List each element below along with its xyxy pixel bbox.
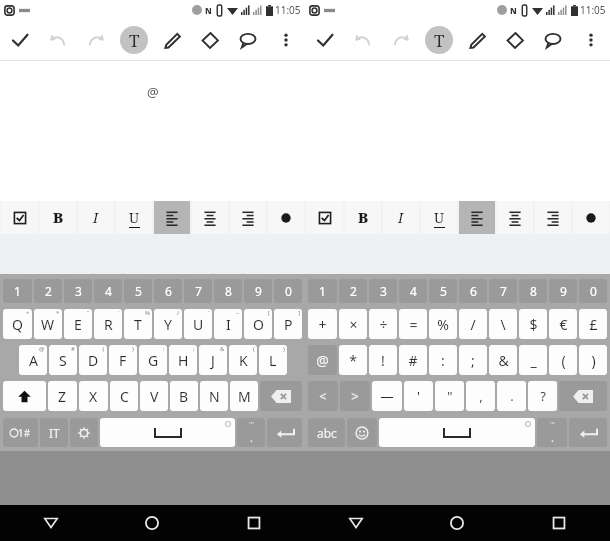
button[interactable]: N xyxy=(200,381,228,411)
button[interactable]: 1 xyxy=(3,279,32,303)
button[interactable]: \ xyxy=(489,309,517,339)
button[interactable] xyxy=(459,201,495,234)
button[interactable]: ( xyxy=(549,345,577,375)
button[interactable]: abc xyxy=(308,418,345,447)
button[interactable]: 5 xyxy=(124,279,152,303)
button[interactable]: U xyxy=(116,201,152,234)
button[interactable]: 0 xyxy=(274,279,302,303)
button[interactable]: : xyxy=(429,345,457,375)
button[interactable]: Undo xyxy=(344,20,382,60)
button[interactable]: Done xyxy=(0,20,39,60)
button[interactable]: Recents xyxy=(203,505,305,541)
button[interactable]: , xyxy=(466,381,495,411)
button[interactable]: ? xyxy=(528,381,557,411)
button[interactable]: E xyxy=(64,309,92,339)
button[interactable]: = xyxy=(399,309,427,339)
button[interactable]: & xyxy=(489,345,517,375)
button[interactable]: V xyxy=(140,381,168,411)
button[interactable]: H xyxy=(169,345,197,375)
button[interactable]: IT xyxy=(40,418,68,447)
button[interactable]: B xyxy=(170,381,198,411)
button[interactable]: I xyxy=(214,309,242,339)
button[interactable]: — xyxy=(372,381,402,411)
button[interactable]: ! xyxy=(369,345,397,375)
button[interactable]: B xyxy=(40,201,76,234)
button[interactable]: J xyxy=(199,345,227,375)
button[interactable]: ) xyxy=(579,345,607,375)
button[interactable] xyxy=(497,201,533,234)
button[interactable]: 4 xyxy=(94,279,122,303)
button[interactable]: 8 xyxy=(519,279,547,303)
button[interactable]: U xyxy=(421,201,457,234)
button[interactable]: D xyxy=(79,345,107,375)
button[interactable]: € xyxy=(549,309,577,339)
button[interactable] xyxy=(230,201,266,234)
button[interactable]: Done xyxy=(305,20,344,60)
button[interactable]: Q xyxy=(3,309,32,339)
button[interactable]: L xyxy=(259,345,287,375)
button[interactable]: 6 xyxy=(154,279,182,303)
button[interactable]: Enter xyxy=(267,418,302,447)
button[interactable]: Comment xyxy=(534,20,572,60)
button[interactable]: Shift xyxy=(3,381,46,411)
button[interactable]: F xyxy=(109,345,137,375)
button[interactable]: 2 xyxy=(34,279,62,303)
button[interactable]: B xyxy=(345,201,381,234)
button[interactable]: W xyxy=(34,309,62,339)
button[interactable]: 8 xyxy=(214,279,242,303)
button[interactable]: Pen xyxy=(458,20,496,60)
button[interactable]: 3 xyxy=(64,279,92,303)
button[interactable]: Back xyxy=(0,505,101,541)
button[interactable]: M xyxy=(230,381,258,411)
button[interactable]: Enter xyxy=(569,418,607,447)
button[interactable]: # xyxy=(399,345,427,375)
button[interactable]: Eraser xyxy=(496,20,534,60)
button[interactable]: Home xyxy=(406,505,508,541)
button[interactable]: More options xyxy=(572,20,610,60)
button[interactable]: Period xyxy=(537,418,567,447)
button[interactable]: Space xyxy=(100,418,235,447)
button[interactable]: 5 xyxy=(429,279,457,303)
button[interactable]: 1 xyxy=(308,279,337,303)
button[interactable]: More options xyxy=(267,20,305,60)
button[interactable]: Settings xyxy=(70,418,98,447)
button[interactable]: 0 xyxy=(579,279,607,303)
button[interactable]: 9 xyxy=(549,279,577,303)
button[interactable]: × xyxy=(339,309,367,339)
button[interactable]: $ xyxy=(519,309,547,339)
button[interactable]: Text xyxy=(420,20,458,60)
button[interactable]: Z xyxy=(48,381,77,411)
button[interactable]: Home xyxy=(101,505,203,541)
button[interactable]: I xyxy=(383,201,419,234)
button[interactable]: Undo xyxy=(39,20,77,60)
button[interactable]: Pen xyxy=(153,20,191,60)
button[interactable]: Eraser xyxy=(191,20,229,60)
button[interactable]: C xyxy=(110,381,138,411)
button[interactable]: Recents xyxy=(508,505,610,541)
button[interactable]: X xyxy=(79,381,108,411)
button[interactable]: " xyxy=(435,381,464,411)
button[interactable]: + xyxy=(308,309,337,339)
button[interactable]: Period xyxy=(237,418,265,447)
button[interactable] xyxy=(154,201,190,234)
button[interactable]: Back xyxy=(305,505,406,541)
button[interactable]: ' xyxy=(404,381,433,411)
button[interactable]: < xyxy=(308,381,338,411)
button[interactable]: K xyxy=(229,345,257,375)
button[interactable]: O xyxy=(244,309,272,339)
button[interactable]: Redo xyxy=(77,20,115,60)
button[interactable] xyxy=(573,201,609,234)
button[interactable]: U xyxy=(184,309,212,339)
button[interactable]: Y xyxy=(154,309,182,339)
button[interactable]: _ xyxy=(519,345,547,375)
button[interactable] xyxy=(306,201,343,234)
button[interactable]: Backspace xyxy=(260,381,302,411)
button[interactable]: £ xyxy=(579,309,607,339)
button[interactable]: Comment xyxy=(229,20,267,60)
button[interactable]: / xyxy=(459,309,487,339)
button[interactable] xyxy=(535,201,571,234)
button[interactable]: T xyxy=(124,309,152,339)
button[interactable]: * xyxy=(339,345,367,375)
button[interactable] xyxy=(1,201,38,234)
button[interactable]: Redo xyxy=(382,20,420,60)
